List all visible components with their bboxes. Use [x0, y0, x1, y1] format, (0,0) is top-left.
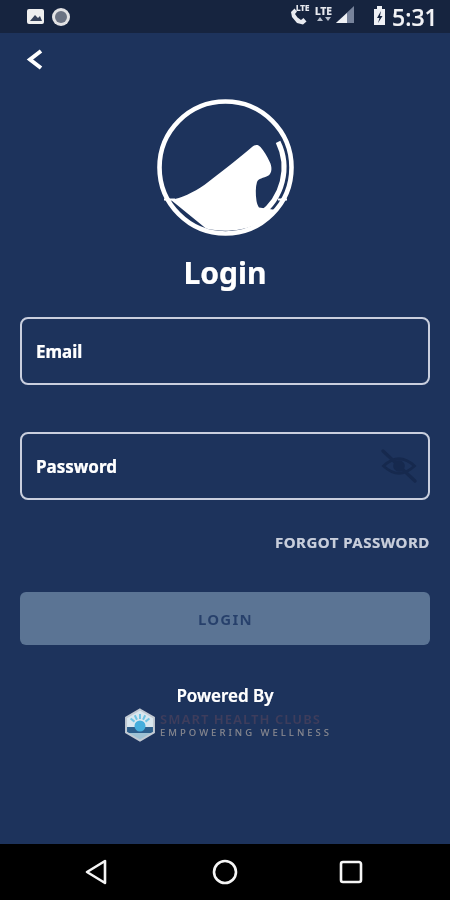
- button[interactable]: [76, 850, 120, 894]
- button[interactable]: Email: [20, 317, 430, 385]
- button[interactable]: [329, 850, 373, 894]
- staticText: LTE: [315, 4, 332, 18]
- button[interactable]: LOGIN: [20, 592, 430, 645]
- staticText: Login: [0, 252, 450, 293]
- button[interactable]: [203, 850, 247, 894]
- staticText: LTE: [296, 2, 310, 13]
- staticText: EMPOWERING WELLNESS: [160, 726, 332, 739]
- staticText: Password: [36, 455, 117, 478]
- staticText: LOGIN: [198, 609, 253, 629]
- staticText: 5:31: [392, 1, 438, 32]
- staticText: Powered By: [0, 684, 450, 707]
- button[interactable]: FORGOT PASSWORD: [275, 532, 430, 552]
- staticText: SMART HEALTH CLUBS: [160, 710, 322, 728]
- button[interactable]: [16, 42, 52, 78]
- button[interactable]: Password: [20, 432, 430, 500]
- staticText: Email: [36, 340, 83, 363]
- button[interactable]: [381, 448, 417, 484]
